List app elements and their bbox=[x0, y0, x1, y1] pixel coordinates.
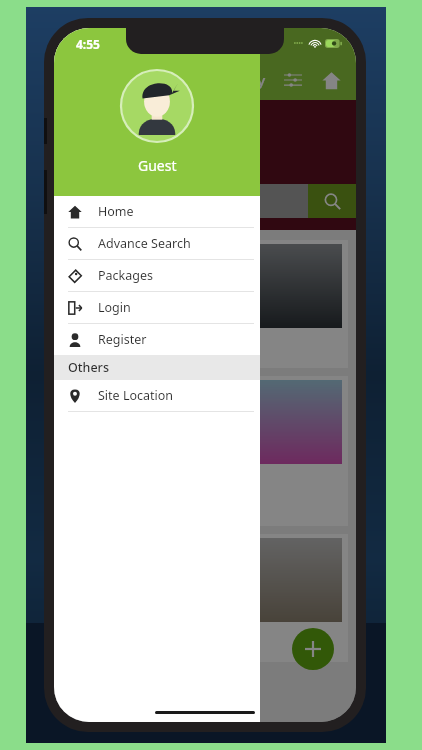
staticText: Ad bbox=[71, 250, 82, 261]
button[interactable]: Home bbox=[318, 67, 344, 93]
button[interactable]: Home bbox=[54, 196, 260, 227]
staticText: Login bbox=[98, 299, 131, 316]
staticText: Toyota 4-Runner 200... bbox=[70, 334, 197, 350]
button[interactable]: Toyota 4-Runner 200... bbox=[62, 240, 348, 368]
button[interactable]: Building bbox=[62, 534, 348, 662]
button[interactable]: Login bbox=[54, 292, 260, 323]
staticText: Guest bbox=[138, 156, 177, 175]
staticText: Buy bbox=[238, 70, 266, 90]
staticText: Advance Search bbox=[98, 235, 191, 252]
button[interactable]: Register bbox=[54, 324, 260, 355]
staticText: Register bbox=[98, 331, 147, 348]
staticText: Packages bbox=[98, 267, 153, 284]
staticText: Home bbox=[98, 203, 134, 220]
button[interactable]: Items for sale bbox=[62, 376, 348, 526]
button[interactable]: Site Location bbox=[54, 380, 260, 411]
staticText: Site Location bbox=[98, 387, 174, 404]
staticText: 4:55 bbox=[76, 36, 100, 52]
button[interactable]: Search bbox=[308, 184, 356, 218]
staticText: Ad bbox=[71, 386, 82, 397]
button[interactable] bbox=[54, 184, 308, 218]
staticText: Others bbox=[68, 359, 109, 376]
button[interactable]: Add bbox=[292, 628, 334, 670]
button[interactable]: Filter bbox=[280, 67, 306, 93]
button[interactable]: Packages bbox=[54, 260, 260, 291]
button[interactable]: Advance Search bbox=[54, 228, 260, 259]
